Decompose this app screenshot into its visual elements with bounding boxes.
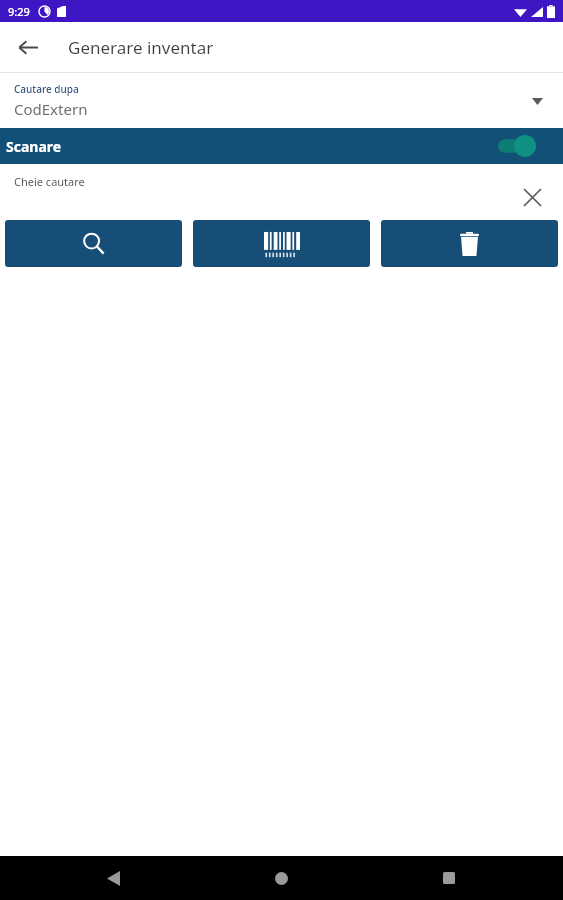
button[interactable]: Scan barcode (193, 220, 370, 267)
staticText: Scanare (6, 137, 62, 156)
staticText: CodExtern (14, 99, 88, 119)
button[interactable]: Clear (515, 180, 549, 214)
staticText: Cautare dupa (14, 82, 79, 96)
staticText: Cheie cautare (14, 174, 85, 189)
staticText: Generare inventar (68, 36, 214, 59)
other: Open dropdown (525, 89, 549, 113)
button[interactable]: Search (5, 220, 182, 267)
button[interactable]: Back (91, 856, 135, 900)
other: Scanare toggle (498, 135, 536, 157)
button[interactable]: Scanare (0, 128, 563, 164)
button[interactable]: Home (259, 856, 303, 900)
button[interactable]: Cautare dupa (0, 73, 563, 128)
button[interactable]: Back (8, 27, 48, 67)
button[interactable]: Recents (427, 856, 471, 900)
staticText: 9:29 (8, 4, 30, 19)
button[interactable]: Delete (381, 220, 558, 267)
